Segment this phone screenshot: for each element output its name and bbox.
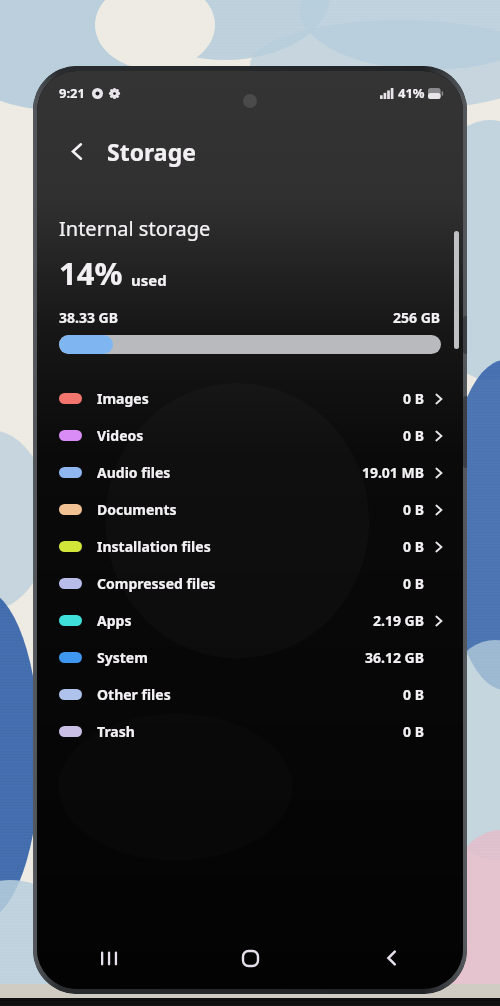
- staticText: 0 B: [403, 389, 424, 408]
- staticText: 0 B: [403, 426, 424, 445]
- staticText: 0 B: [403, 500, 424, 519]
- staticText: 9:21: [59, 84, 85, 102]
- staticText: 19.01 MB: [361, 463, 424, 482]
- staticText: Trash: [97, 722, 135, 741]
- staticText: 0 B: [403, 574, 424, 593]
- button[interactable]: Images: [37, 380, 463, 417]
- staticText: Apps: [97, 611, 132, 630]
- button[interactable]: Apps: [37, 602, 463, 639]
- staticText: Documents: [97, 500, 177, 519]
- staticText: 0 B: [403, 722, 424, 741]
- button[interactable]: Recent apps: [37, 927, 179, 989]
- staticText: Other files: [97, 685, 171, 704]
- staticText: used: [131, 270, 167, 290]
- staticText: 256 GB: [393, 308, 441, 327]
- staticText: 0 B: [403, 537, 424, 556]
- button[interactable]: Documents: [37, 491, 463, 528]
- staticText: 38.33 GB: [59, 308, 119, 327]
- staticText: Storage: [107, 136, 196, 167]
- button[interactable]: Audio files: [37, 454, 463, 491]
- button[interactable]: Installation files: [37, 528, 463, 565]
- staticText: System: [97, 648, 148, 667]
- staticText: Installation files: [97, 537, 211, 556]
- button[interactable]: Other files: [37, 676, 463, 713]
- staticText: 36.12 GB: [364, 648, 424, 667]
- staticText: 14%: [59, 252, 123, 294]
- button[interactable]: Compressed files: [37, 565, 463, 602]
- staticText: Internal storage: [59, 215, 211, 242]
- staticText: 41%: [398, 84, 425, 102]
- button[interactable]: Home: [179, 927, 321, 989]
- button[interactable]: Trash: [37, 713, 463, 750]
- staticText: Audio files: [97, 463, 171, 482]
- button[interactable]: Videos: [37, 417, 463, 454]
- staticText: 2.19 GB: [372, 611, 424, 630]
- button[interactable]: Back: [321, 927, 463, 989]
- staticText: Images: [97, 389, 149, 408]
- button[interactable]: Navigate up: [55, 129, 99, 173]
- staticText: Videos: [97, 426, 144, 445]
- staticText: 0 B: [403, 685, 424, 704]
- button[interactable]: System: [37, 639, 463, 676]
- staticText: Compressed files: [97, 574, 216, 593]
